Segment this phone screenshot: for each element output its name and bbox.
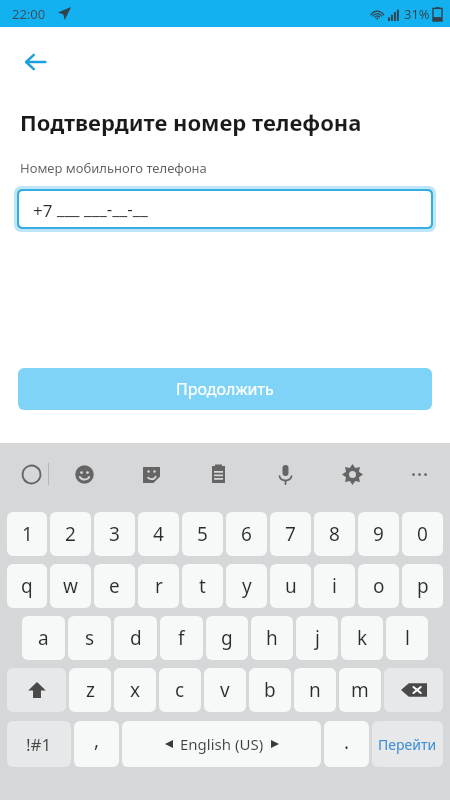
button[interactable]: +7 xyxy=(19,191,431,227)
staticText: m xyxy=(351,677,369,703)
staticText: 6 xyxy=(241,521,252,547)
staticText: c xyxy=(175,677,185,703)
button[interactable]: u xyxy=(270,564,311,608)
button[interactable]: Clipboard xyxy=(201,457,235,491)
staticText: y xyxy=(242,573,252,599)
staticText: p xyxy=(417,573,429,599)
button[interactable]: z xyxy=(69,668,111,712)
staticText: 0 xyxy=(417,521,428,547)
staticText: 31% xyxy=(404,5,430,23)
staticText: v xyxy=(220,677,230,703)
staticText: 22:00 xyxy=(12,5,46,23)
button[interactable]: Перейти xyxy=(372,721,443,767)
button[interactable]: 3 xyxy=(94,512,135,556)
staticText: f xyxy=(178,625,185,651)
staticText: 3 xyxy=(109,521,120,547)
button[interactable]: Shift xyxy=(7,668,66,712)
button[interactable]: 2 xyxy=(50,512,91,556)
button[interactable]: k xyxy=(341,616,383,660)
button[interactable]: m xyxy=(339,668,381,712)
staticText: English (US) xyxy=(180,734,264,754)
button[interactable]: f xyxy=(160,616,203,660)
staticText: Номер мобильного телефона xyxy=(20,159,207,177)
staticText: 4 xyxy=(153,521,164,547)
button[interactable]: Back xyxy=(14,41,56,83)
staticText: Продолжить xyxy=(176,378,274,400)
button[interactable]: 5 xyxy=(182,512,223,556)
button[interactable]: Emoji xyxy=(67,457,101,491)
button[interactable]: . xyxy=(324,721,369,767)
staticText: u xyxy=(285,573,297,599)
button[interactable]: 0 xyxy=(402,512,443,556)
staticText: . xyxy=(344,729,350,755)
staticText: w xyxy=(63,573,78,599)
button[interactable]: !#1 xyxy=(7,721,71,767)
staticText: r xyxy=(155,573,163,599)
staticText: g xyxy=(221,625,233,651)
button[interactable]: d xyxy=(114,616,157,660)
button[interactable]: r xyxy=(138,564,179,608)
button[interactable]: Stickers xyxy=(134,457,168,491)
button[interactable]: l xyxy=(386,616,428,660)
button[interactable]: b xyxy=(249,668,291,712)
button[interactable]: g xyxy=(206,616,248,660)
staticText: s xyxy=(85,625,95,651)
staticText: i xyxy=(332,573,337,599)
button[interactable]: a xyxy=(22,616,65,660)
staticText: , xyxy=(94,727,100,753)
staticText: ___ ___-__-__ xyxy=(57,197,148,220)
button[interactable]: i xyxy=(314,564,355,608)
button[interactable]: 1 xyxy=(7,512,47,556)
staticText: e xyxy=(109,573,120,599)
button[interactable]: Voice input xyxy=(268,457,302,491)
staticText: 5 xyxy=(197,521,208,547)
staticText: 7 xyxy=(285,521,296,547)
staticText: n xyxy=(309,677,321,703)
button[interactable]: s xyxy=(68,616,111,660)
button[interactable]: o xyxy=(358,564,399,608)
button[interactable]: 4 xyxy=(138,512,179,556)
button[interactable]: Settings xyxy=(335,457,369,491)
staticText: Перейти xyxy=(378,735,437,754)
staticText: b xyxy=(264,677,276,703)
button[interactable]: j xyxy=(296,616,338,660)
button[interactable]: Space xyxy=(122,721,321,767)
staticText: 8 xyxy=(329,521,340,547)
staticText: !#1 xyxy=(26,733,52,756)
staticText: d xyxy=(130,625,142,651)
staticText: 1 xyxy=(22,521,33,547)
button[interactable]: n xyxy=(294,668,336,712)
staticText: j xyxy=(315,625,320,651)
button[interactable]: Translate xyxy=(14,457,48,491)
staticText: h xyxy=(266,625,278,651)
button[interactable]: More options xyxy=(402,457,436,491)
staticText: q xyxy=(21,573,33,599)
button[interactable]: c xyxy=(159,668,201,712)
button[interactable]: e xyxy=(94,564,135,608)
button[interactable]: 9 xyxy=(358,512,399,556)
button[interactable]: x xyxy=(114,668,156,712)
staticText: 2 xyxy=(65,521,76,547)
button[interactable]: w xyxy=(50,564,91,608)
button[interactable]: q xyxy=(7,564,47,608)
button[interactable]: 6 xyxy=(226,512,267,556)
staticText: a xyxy=(38,625,49,651)
staticText: +7 xyxy=(33,199,57,222)
staticText: o xyxy=(373,573,385,599)
button[interactable]: y xyxy=(226,564,267,608)
staticText: Подтвердите номер телефона xyxy=(20,107,362,137)
staticText: x xyxy=(130,677,141,703)
staticText: 9 xyxy=(373,521,384,547)
button[interactable]: t xyxy=(182,564,223,608)
button[interactable]: v xyxy=(204,668,246,712)
button[interactable]: 7 xyxy=(270,512,311,556)
staticText: t xyxy=(199,573,206,599)
button[interactable]: h xyxy=(251,616,293,660)
button[interactable]: , xyxy=(74,721,119,767)
staticText: z xyxy=(86,677,95,703)
staticText: k xyxy=(357,625,368,651)
button[interactable]: p xyxy=(402,564,443,608)
button[interactable]: 8 xyxy=(314,512,355,556)
button[interactable]: Backspace xyxy=(384,668,443,712)
button[interactable]: Продолжить xyxy=(18,368,432,410)
